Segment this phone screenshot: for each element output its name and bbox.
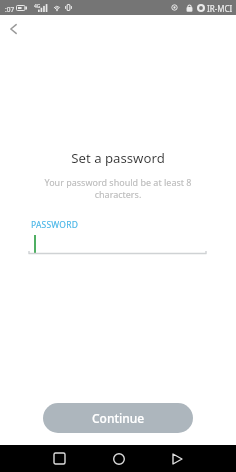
button[interactable] <box>28 232 207 255</box>
staticText: PASSWORD <box>31 219 79 231</box>
staticText: Continue <box>92 410 145 426</box>
staticText: Your password should be at least 8 chara… <box>38 176 198 200</box>
staticText: :07 <box>5 5 15 14</box>
button[interactable]: Back <box>0 13 29 45</box>
button[interactable]: Continue <box>43 403 193 433</box>
staticText: IR-MCI <box>207 3 233 14</box>
button[interactable]: Home <box>105 445 132 472</box>
staticText: 4G <box>34 3 41 10</box>
button[interactable]: Back <box>164 445 191 472</box>
button[interactable]: Recents <box>46 445 73 472</box>
staticText: Set a password <box>71 149 165 167</box>
